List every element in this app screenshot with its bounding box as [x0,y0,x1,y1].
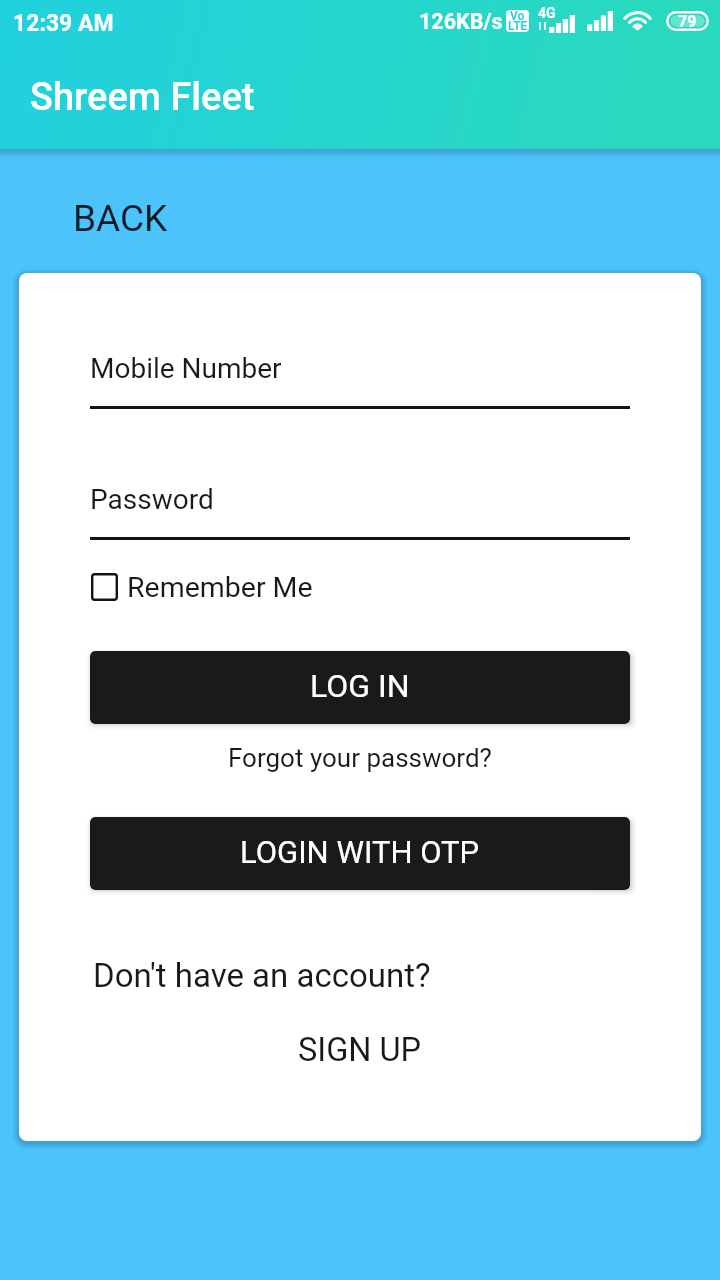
button[interactable]: Back [52,186,198,248]
staticText: SIGN UP [298,1031,422,1069]
staticText: Don't have an account? [93,956,431,995]
button[interactable]: Mobile Number [90,345,630,409]
button[interactable]: LOGIN WITH OTP [90,817,630,890]
button[interactable]: LOG IN [90,651,630,724]
staticText: Vo [510,10,525,23]
staticText: 79 [678,12,697,31]
button[interactable]: Forgot your password? [19,741,701,774]
staticText: LOGIN WITH OTP [240,834,480,870]
staticText: 12:39 AM [13,10,114,37]
staticText: LTE [508,19,528,32]
button[interactable]: SIGN UP [19,1029,701,1070]
staticText: Shreem Fleet [30,75,255,120]
staticText: Mobile Number [90,352,282,385]
staticText: BACK [73,197,168,240]
staticText: Remember Me [127,571,313,604]
button[interactable]: Password [90,476,630,540]
staticText: LOG IN [310,667,410,705]
staticText: 126KB/s [419,9,503,34]
button[interactable]: Remember Me [90,568,350,610]
staticText: 4G [538,5,556,21]
staticText: Forgot your password? [228,743,492,773]
staticText: Password [90,483,214,516]
